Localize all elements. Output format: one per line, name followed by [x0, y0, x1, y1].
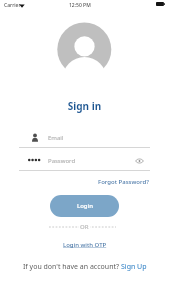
staticText: Email	[48, 134, 64, 142]
button[interactable]: Email	[19, 131, 150, 148]
staticText: OR	[80, 223, 89, 231]
staticText: Sign in	[0, 99, 169, 113]
button[interactable]: Sign Up	[121, 262, 147, 272]
staticText: If you don't have an account?	[23, 262, 121, 272]
staticText: Login	[77, 202, 93, 210]
staticText: 12:50 PM	[69, 2, 91, 9]
button[interactable]: Password	[19, 155, 150, 171]
staticText: Password	[48, 157, 76, 165]
button[interactable]: Forgot Password?	[97, 177, 150, 187]
button[interactable]: Login with OTP	[62, 240, 108, 250]
staticText: Carrier	[4, 2, 21, 9]
button[interactable]: Show password	[135, 158, 144, 164]
button[interactable]: Login	[50, 195, 119, 217]
